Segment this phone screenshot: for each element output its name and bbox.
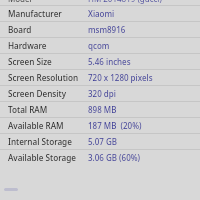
staticText: Available RAM	[8, 120, 64, 131]
button[interactable]: Screen Size	[0, 54, 200, 69]
button[interactable]: Board	[0, 22, 200, 37]
staticText: Total RAM	[8, 104, 48, 115]
button[interactable]: Total RAM	[0, 102, 200, 117]
staticText: Model	[8, 0, 32, 4]
staticText: Board	[8, 24, 32, 35]
staticText: qcom	[88, 40, 110, 51]
button[interactable]: Screen Density	[0, 86, 200, 101]
staticText: 320 dpi	[88, 88, 116, 99]
button[interactable]: Internal Storage	[0, 134, 200, 149]
button[interactable]: Available Storage	[0, 150, 200, 165]
staticText: 720 x 1280 pixels	[88, 72, 153, 83]
staticText: Screen Density	[8, 88, 66, 99]
button[interactable]: Screen Resolution	[0, 70, 200, 85]
button[interactable]: Manufacturer	[0, 6, 200, 21]
staticText: HM 2014819 (gucci)	[88, 0, 162, 4]
staticText: 187 MB (20%)	[88, 120, 142, 131]
staticText: Screen Size	[8, 56, 52, 67]
button[interactable]: Available RAM	[0, 118, 200, 133]
staticText: Xiaomi	[88, 8, 115, 19]
staticText: 5.46 inches	[88, 56, 131, 67]
staticText: Internal Storage	[8, 136, 72, 147]
staticText: 3.06 GB (60%)	[88, 152, 141, 163]
staticText: Screen Resolution	[8, 72, 79, 83]
staticText: Manufacturer	[8, 8, 62, 19]
staticText: 898 MB	[88, 104, 117, 115]
staticText: Hardware	[8, 40, 47, 51]
staticText: Available Storage	[8, 152, 76, 163]
staticText: msm8916	[88, 24, 126, 35]
button[interactable]: Hardware	[0, 38, 200, 53]
staticText: 5.07 GB	[88, 136, 118, 147]
